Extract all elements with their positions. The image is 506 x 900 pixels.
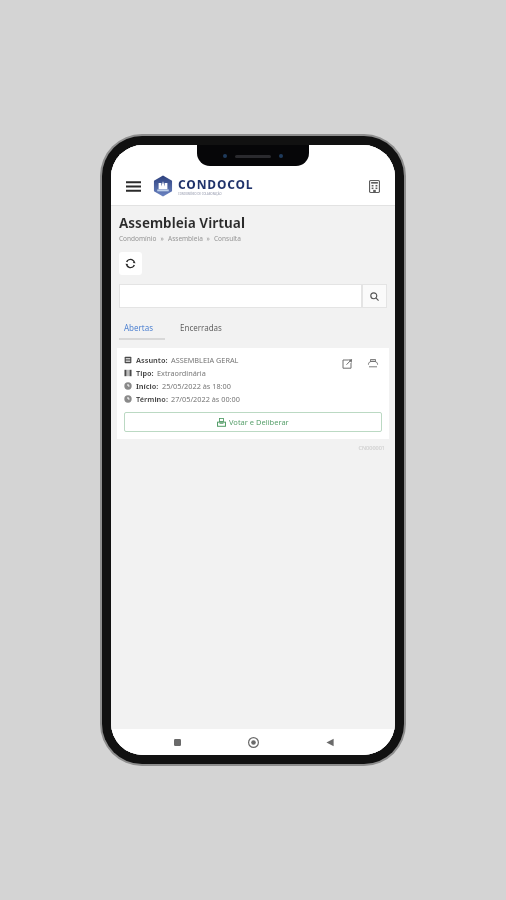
staticText: Tipo: [136,368,154,378]
button[interactable]: Pesquisar [362,284,387,308]
staticText: » [203,234,214,243]
button[interactable]: Abertas [119,318,159,337]
staticText: CONDOCOL [178,176,254,192]
button[interactable]: Voltar [319,731,341,753]
staticText: ASSEMBLEIA GERAL [171,355,239,365]
staticText: 25/05/2022 às 18:00 [162,381,231,391]
button[interactable]: Condomínio [363,175,385,197]
button[interactable]: Imprimir [364,355,382,373]
staticText: Votar e Deliberar [229,417,289,427]
staticText: Condomínio [119,234,157,243]
button[interactable] [119,284,362,308]
staticText: Assunto: [136,355,168,365]
staticText: Abertas [124,322,154,333]
staticText: Assembleia [168,234,203,243]
staticText: CONDOMÍNIO DE COLABORAÇÃO [178,192,222,196]
staticText: Extraordinária [157,368,206,378]
staticText: CN000001 [111,444,385,451]
button[interactable]: Recentes [166,731,188,753]
button[interactable]: Editar [338,355,356,373]
staticText: 27/05/2022 às 00:00 [171,394,240,404]
staticText: » [157,234,168,243]
staticText: Término: [136,394,168,404]
staticText: Consulta [214,234,241,243]
button[interactable]: Atualizar [119,252,142,275]
button[interactable]: Início [242,731,264,753]
button[interactable]: Votar e Deliberar [124,412,382,432]
staticText: Encerradas [180,322,222,333]
button[interactable]: Condocol logo [152,175,174,197]
staticText: Início: [136,381,159,391]
button[interactable]: Encerradas [175,318,227,337]
button[interactable]: Menu [121,174,145,198]
staticText: Assembleia Virtual [119,214,245,232]
